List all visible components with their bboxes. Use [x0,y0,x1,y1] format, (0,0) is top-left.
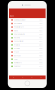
button[interactable]: Tab 1 [9,75,18,79]
staticText: 11:57 [39,23,43,24]
staticText: 10:22 [39,30,43,32]
button[interactable]: Calendar [9,65,46,68]
button[interactable]: Tab 3 [27,75,36,79]
staticText: 08:12 [39,44,43,46]
staticText: 09:31 [39,37,43,39]
staticText: Calendar [14,65,21,67]
button[interactable]: Photos library [9,25,46,29]
button[interactable]: Documents [9,22,46,25]
button[interactable]: Archive [9,47,46,50]
staticText: Documents [14,23,22,24]
button[interactable]: Music [9,29,46,33]
staticText: Music [14,30,18,32]
staticText: Projects [14,44,20,46]
staticText: Downloads folder [14,19,26,21]
staticText: 09:58 [39,33,43,35]
button[interactable]: Trash [9,50,46,54]
button[interactable]: Tab 4 [36,75,46,79]
button[interactable]: Tab 2 [18,75,27,79]
staticText: Notes [14,58,18,60]
button[interactable]: Favourites list [9,40,46,43]
staticText: Inbox [10,15,14,17]
staticText: 12:04 [39,19,43,21]
staticText: Backups [14,55,21,56]
staticText: 05:10 [39,65,43,67]
button[interactable]: Backups [9,54,46,58]
staticText: Archive [14,48,20,49]
staticText: Shared albums [14,33,25,35]
button[interactable]: Inbox [9,15,16,17]
button[interactable]: Shared albums [9,33,46,36]
staticText: 06:59 [39,55,43,56]
staticText: Recents [14,37,20,39]
button[interactable]: Notes [9,58,46,61]
staticText: 06:21 [39,58,43,60]
staticText: 07:30 [39,51,43,53]
button[interactable]: Reminders [9,61,46,65]
staticText: 08:47 [39,40,43,42]
staticText: Favourites list [14,40,23,42]
staticText: 05:48 [39,62,43,64]
button[interactable]: Downloads folder [9,18,46,22]
staticText: Reminders [14,62,22,64]
button[interactable]: Projects [9,43,46,47]
staticText: Photos library [14,26,24,28]
staticText: 07:55 [39,48,43,49]
button[interactable]: Recents [9,36,46,40]
